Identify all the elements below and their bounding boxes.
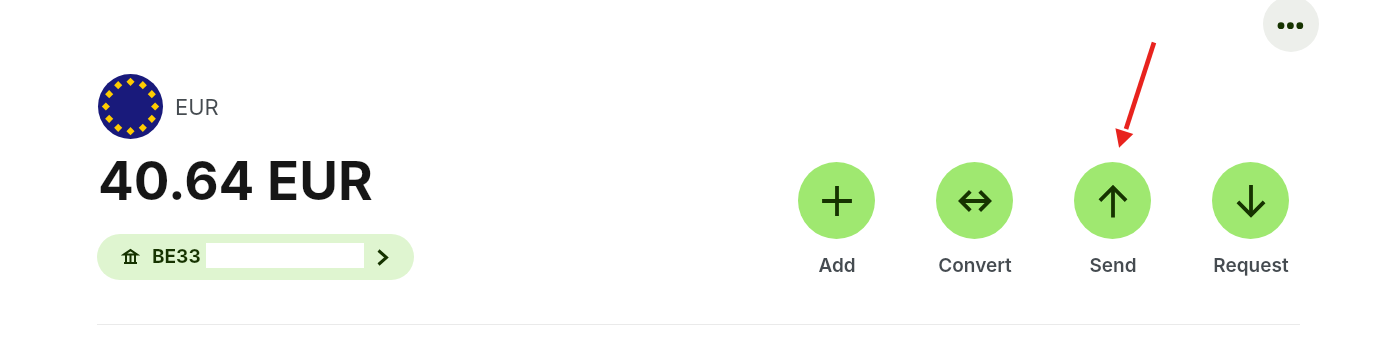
button[interactable]: Request	[1212, 162, 1289, 277]
staticText: EUR	[175, 94, 219, 121]
button[interactable]: Send	[1074, 162, 1151, 277]
staticText: Request	[1213, 254, 1289, 277]
staticText: BE33	[152, 245, 201, 268]
staticText: Add	[818, 254, 856, 277]
button[interactable]: Add	[798, 162, 875, 277]
staticText: 40.64 EUR	[98, 149, 373, 213]
staticText: Convert	[938, 254, 1012, 277]
button[interactable]: More options	[1263, 0, 1319, 52]
button[interactable]: Convert	[936, 162, 1013, 277]
staticText: Send	[1089, 254, 1137, 277]
button[interactable]: BE33	[97, 234, 414, 280]
